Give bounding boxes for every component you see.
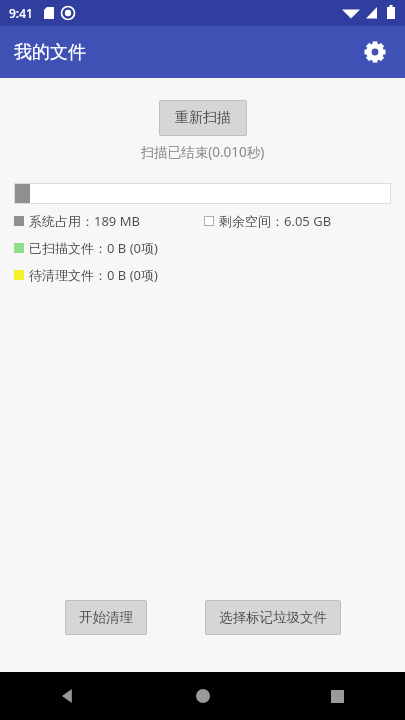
staticText: 剩余空间：6.05 GB <box>219 212 332 230</box>
staticText: 重新扫描 <box>175 109 231 127</box>
staticText: 系统占用：189 MB <box>29 212 140 230</box>
button[interactable]: Recent apps <box>270 672 405 720</box>
button[interactable]: Settings <box>355 32 395 72</box>
button[interactable]: 选择标记垃圾文件 <box>205 600 341 635</box>
button[interactable]: 重新扫描 <box>159 100 247 136</box>
staticText: 开始清理 <box>79 609 133 626</box>
staticText: 我的文件 <box>14 41 86 64</box>
staticText: 选择标记垃圾文件 <box>219 609 327 626</box>
staticText: 扫描已结束(0.010秒) <box>0 143 405 161</box>
staticText: 已扫描文件：0 B (0项) <box>29 239 158 257</box>
staticText: 9:41 <box>9 5 33 21</box>
button[interactable]: Back <box>0 672 135 720</box>
staticText: 待清理文件：0 B (0项) <box>29 266 158 284</box>
button[interactable]: Home <box>135 672 270 720</box>
button[interactable]: 开始清理 <box>65 600 147 635</box>
